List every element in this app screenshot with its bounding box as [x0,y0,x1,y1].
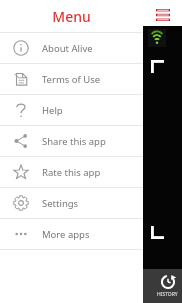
staticText: Rate this app [42,166,101,179]
staticText: More apps [42,228,90,241]
button[interactable]: Rate this app [0,157,143,187]
button[interactable]: Settings [0,188,143,218]
button[interactable]: Wi-Fi connected [148,29,166,47]
button[interactable]: Terms of Use [0,64,143,94]
button[interactable]: History [157,274,178,298]
staticText: About Alive [42,42,93,55]
button[interactable]: Help [0,95,143,125]
staticText: Terms of Use [42,73,101,86]
button[interactable]: About Alive [0,33,143,63]
staticText: Menu [52,7,91,26]
staticText: Share this app [42,135,106,148]
button[interactable]: More apps [0,219,143,249]
button[interactable]: Share this app [0,126,143,156]
staticText: Settings [42,197,79,210]
staticText: HISTORY [157,291,178,298]
button[interactable]: Menu [151,3,175,27]
staticText: Help [42,104,63,117]
